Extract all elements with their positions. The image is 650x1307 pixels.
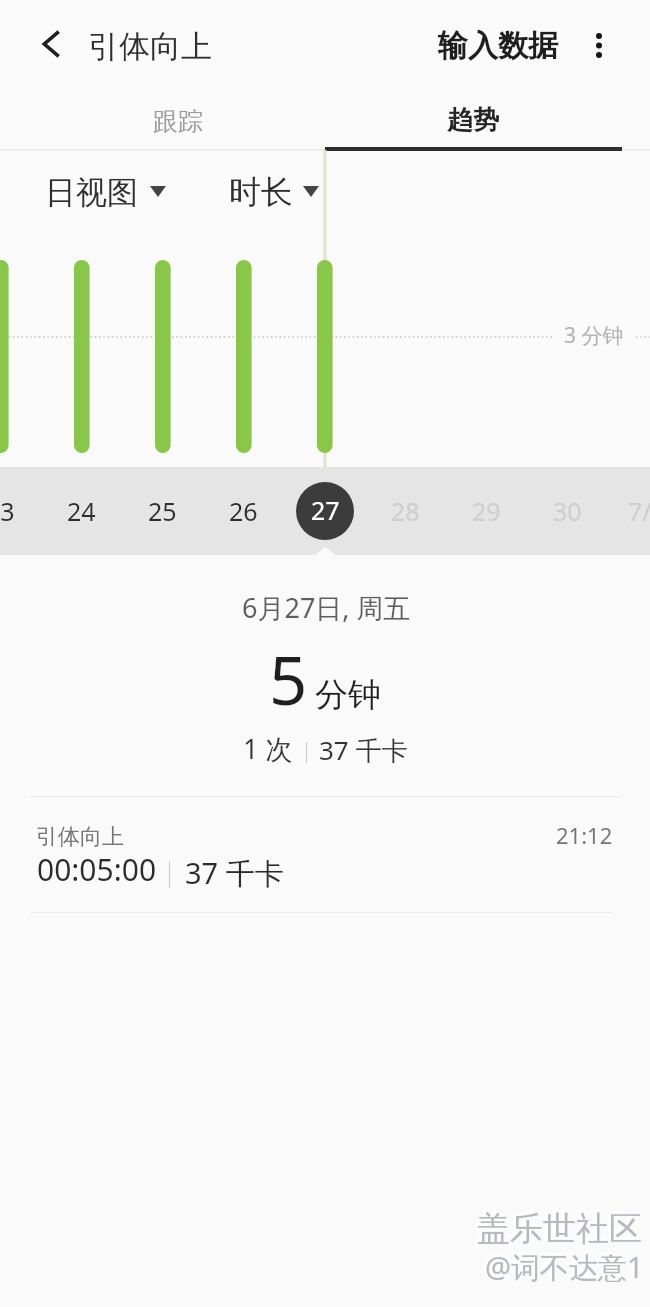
staticText: 盖乐世社区	[474, 1205, 639, 1247]
staticText: 引体向上	[88, 27, 212, 66]
button[interactable]: More options	[576, 22, 622, 68]
staticText: 24	[67, 494, 96, 528]
button[interactable]: 26	[203, 467, 283, 555]
staticText: 日视图	[45, 173, 138, 212]
staticText: 37 千卡	[319, 732, 408, 768]
staticText: 输入数据	[438, 27, 558, 65]
button[interactable]: 输入数据	[426, 12, 569, 78]
button[interactable]: 引体向上	[85, 12, 217, 78]
staticText: 23	[0, 494, 15, 528]
button[interactable]: Back	[29, 21, 75, 67]
staticText: 引体向上	[36, 823, 124, 851]
staticText: 25	[148, 494, 177, 528]
staticText: 00:05:00	[37, 849, 157, 890]
staticText: 21:12	[556, 820, 613, 850]
staticText: 27	[311, 493, 340, 527]
staticText: 37 千卡	[185, 853, 284, 893]
staticText: 6月27日, 周五	[242, 589, 411, 626]
staticText: 28	[391, 494, 420, 528]
staticText: 盖乐世社区	[477, 1208, 642, 1250]
staticText: 5	[269, 633, 308, 724]
staticText: 1 次	[243, 730, 293, 767]
button[interactable]: 跟踪	[30, 92, 325, 149]
staticText: 3 分钟	[564, 321, 624, 350]
button[interactable]: 7/1	[608, 467, 650, 555]
button[interactable]: 29	[446, 467, 526, 555]
staticText: 趋势	[447, 104, 499, 137]
button[interactable]: 23	[0, 467, 40, 555]
staticText: 时长	[229, 172, 293, 212]
staticText: 跟踪	[153, 106, 203, 137]
staticText: @词不达意1	[482, 1244, 641, 1284]
button[interactable]: 日视图	[40, 163, 172, 215]
staticText: @词不达意1	[485, 1247, 644, 1287]
button[interactable]: 趋势	[325, 92, 622, 149]
staticText: 7/1	[628, 494, 650, 528]
staticText: 30	[553, 494, 582, 528]
button[interactable]: 25	[122, 467, 202, 555]
button[interactable]: 28	[365, 467, 445, 555]
button[interactable]: 引体向上	[0, 797, 650, 912]
button[interactable]: 24	[41, 467, 121, 555]
button[interactable]: 30	[527, 467, 607, 555]
staticText: 分钟	[315, 674, 381, 716]
staticText: 26	[229, 494, 258, 528]
button[interactable]: 27	[296, 482, 354, 540]
staticText: 29	[472, 494, 501, 528]
button[interactable]: 时长	[224, 163, 325, 215]
